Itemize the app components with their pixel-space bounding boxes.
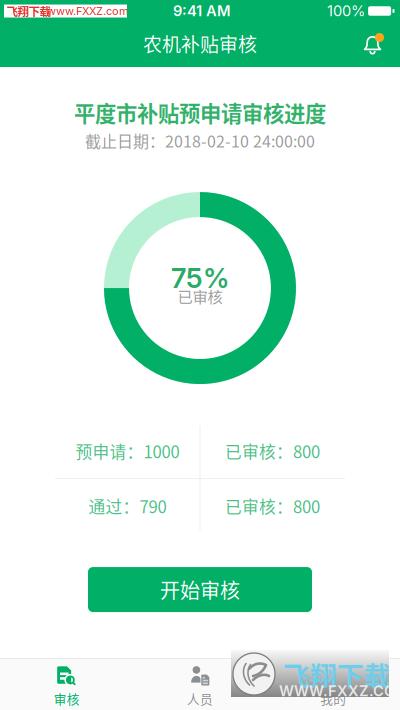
staticText: WWW.FXXZ.COM <box>279 682 400 700</box>
staticText: 飞翔下载 <box>6 3 50 19</box>
button[interactable]: 我的 <box>267 653 400 710</box>
staticText: 已审核：800 <box>225 494 320 518</box>
staticText: 平度市补贴预申请审核进度 <box>74 97 326 128</box>
staticText: www.FXXZ.com <box>47 4 129 18</box>
staticText: 9:41 AM <box>173 2 231 20</box>
staticText: 人员 <box>187 689 213 708</box>
staticText: 截止日期：2018-02-10 24:00:00 <box>85 129 315 152</box>
staticText: 审核 <box>54 689 80 708</box>
staticText: 农机补贴审核 <box>143 30 257 57</box>
button[interactable]: 开始审核 <box>88 567 312 612</box>
button[interactable]: 人员 <box>133 653 267 710</box>
staticText: 100% <box>327 2 365 20</box>
staticText: 已审核：800 <box>225 439 320 463</box>
staticText: 已审核 <box>177 285 222 307</box>
staticText: 飞翔下载 <box>283 655 391 694</box>
staticText: 预申请：1000 <box>75 439 179 463</box>
button[interactable]: 审核 <box>0 653 133 710</box>
staticText: 75% <box>171 261 229 295</box>
staticText: 通过：790 <box>88 494 166 518</box>
button[interactable]: Notifications <box>351 23 400 66</box>
staticText: 我的 <box>320 689 346 708</box>
staticText: 开始审核 <box>160 575 240 604</box>
